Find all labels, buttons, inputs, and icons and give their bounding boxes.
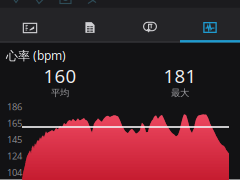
staticText: 最大 [171, 87, 189, 99]
button[interactable]: Heart rate [180, 7, 240, 42]
button[interactable]: Route [0, 7, 60, 42]
staticText: 心率 (bpm) [6, 47, 66, 63]
staticText: 165 [7, 117, 22, 129]
staticText: 186 [7, 100, 22, 113]
staticText: 124 [7, 150, 22, 162]
button[interactable]: Laps [120, 7, 180, 42]
staticText: 145 [7, 133, 22, 146]
staticText: 181 [163, 63, 196, 88]
staticText: 160 [43, 63, 76, 88]
staticText: 104 [7, 166, 22, 178]
button[interactable]: Summary [60, 7, 120, 42]
staticText: 平均 [51, 87, 69, 99]
